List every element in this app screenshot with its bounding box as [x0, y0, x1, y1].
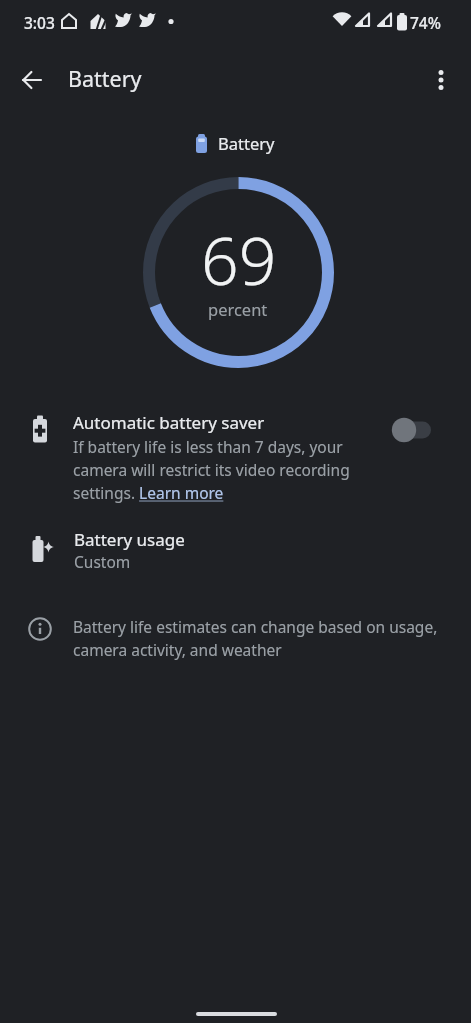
staticText: 74%: [410, 12, 441, 33]
staticText: 69: [201, 214, 277, 304]
staticText: 3:03: [24, 12, 55, 33]
button[interactable]: Battery usage: [0, 524, 471, 582]
staticText: percent: [208, 298, 268, 320]
button[interactable]: [391, 417, 433, 443]
staticText: Automatic battery saver: [73, 411, 265, 434]
staticText: If battery life is less than 7 days, you…: [73, 436, 350, 504]
staticText: Battery life estimates can change based …: [73, 616, 438, 661]
staticText: Battery: [218, 132, 275, 154]
staticText: Battery: [68, 64, 142, 93]
button[interactable]: [16, 64, 48, 96]
staticText: Battery usage: [74, 528, 185, 551]
button[interactable]: [425, 64, 457, 96]
button[interactable]: Battery life estimates can change based …: [0, 608, 471, 674]
button[interactable]: Automatic battery saver: [0, 404, 471, 516]
staticText: Custom: [74, 551, 131, 572]
